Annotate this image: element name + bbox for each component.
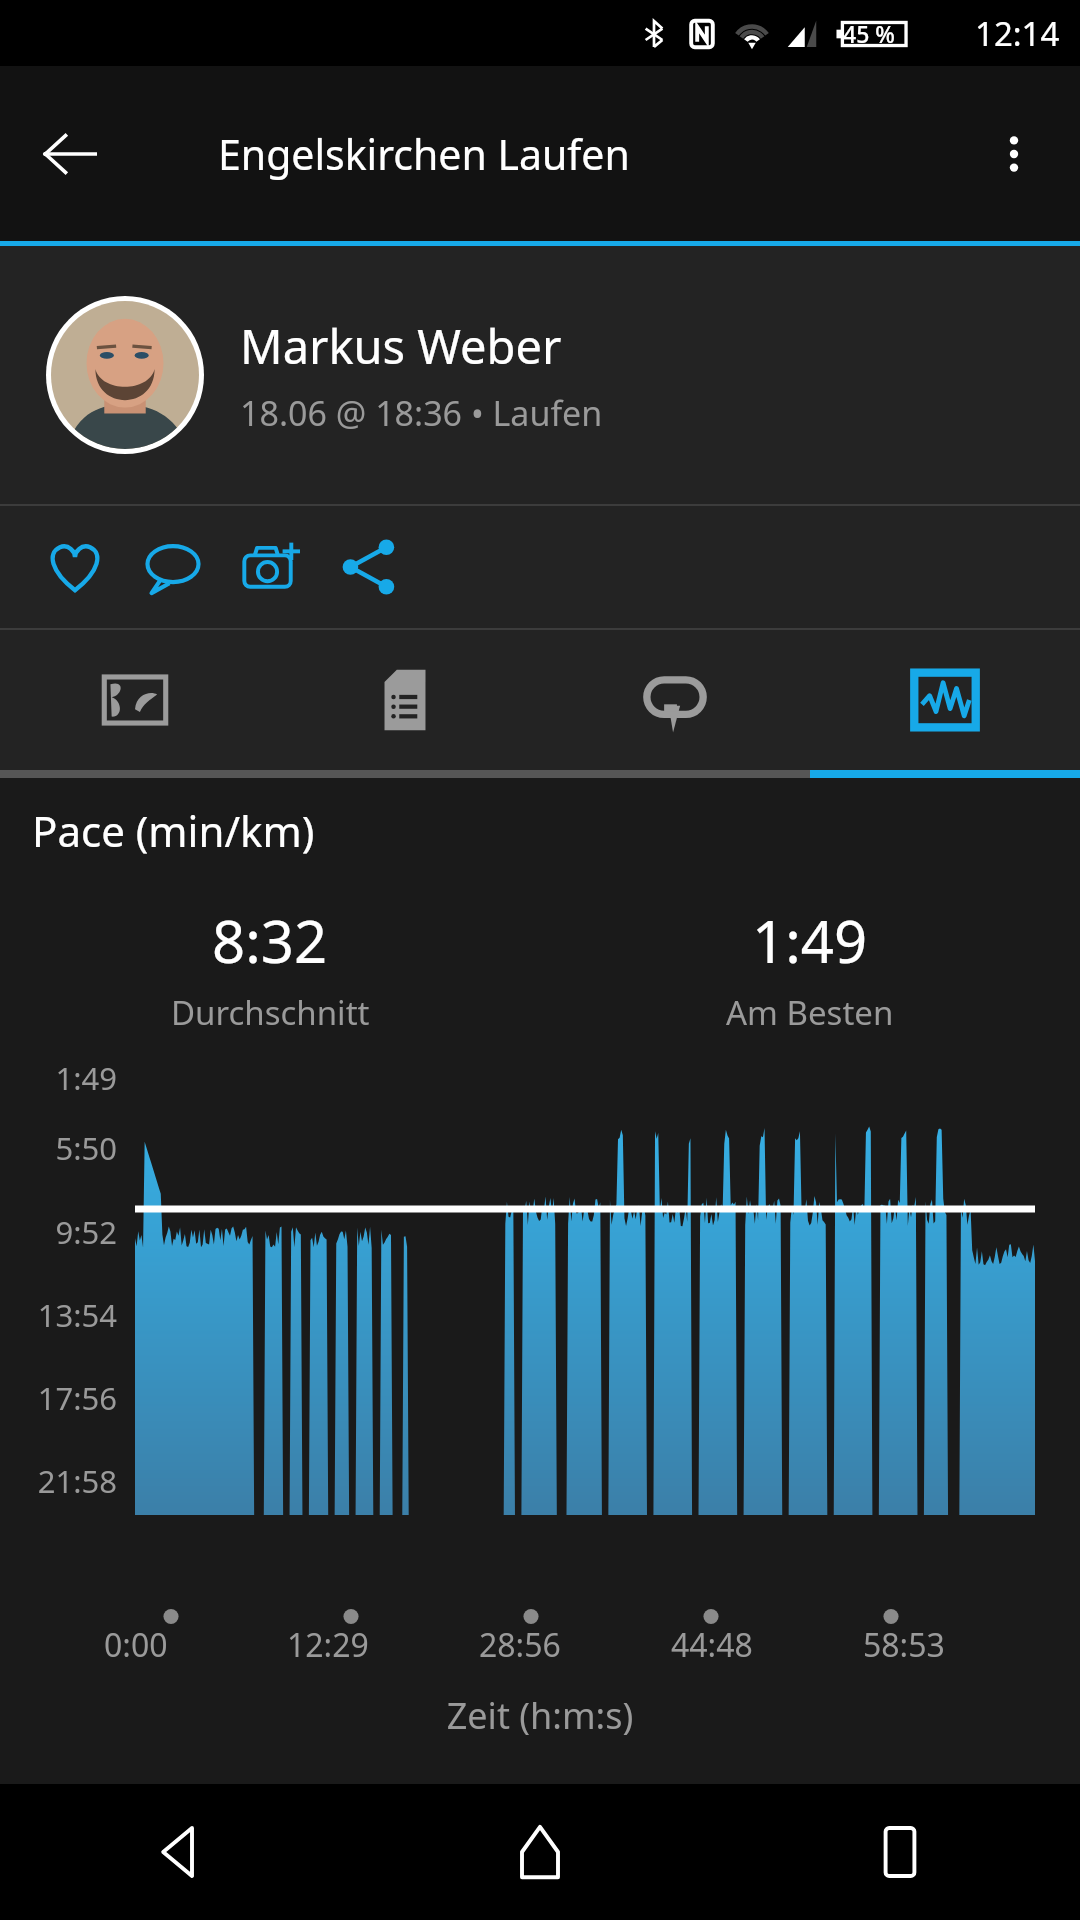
staticText: Zeit (h:m:s) [0,1691,1080,1740]
button[interactable]: Details tab [270,630,540,770]
staticText: Am Besten [726,990,894,1035]
staticText: 18.06 @ 18:36 • Laufen [240,390,603,436]
staticText: 17:56 [0,1377,117,1419]
staticText: 0:00 [104,1623,168,1657]
staticText: 58:53 [863,1623,945,1657]
staticText: 1:49 [752,901,868,980]
button[interactable]: Laps tab [540,630,810,770]
staticText: 44:48 [671,1623,753,1657]
staticText: 8:32 [212,901,328,980]
staticText: 13:54 [0,1294,117,1336]
button[interactable]: Back [30,114,110,194]
button[interactable]: Share [320,518,418,616]
button[interactable]: Comment [124,518,222,616]
button[interactable]: Recent apps [720,1784,1080,1920]
staticText: 28:56 [479,1623,561,1657]
staticText: 21:58 [0,1460,117,1502]
button[interactable]: Charts tab [810,630,1080,770]
button[interactable]: Markus Weber [0,246,1080,504]
staticText: 1:49 [0,1057,117,1099]
staticText: 12:29 [287,1623,369,1657]
button[interactable]: Home [360,1784,720,1920]
button[interactable]: Like [26,518,124,616]
staticText: Pace (min/km) [32,802,315,859]
staticText: 12:14 [975,11,1060,56]
button[interactable]: Map tab [0,630,270,770]
staticText: 9:52 [0,1211,117,1253]
staticText: 45 % [843,18,895,49]
button[interactable]: Add photo [222,518,320,616]
staticText: Markus Weber [240,314,562,378]
button[interactable]: More options [974,114,1054,194]
staticText: Engelskirchen Laufen [218,126,630,182]
button[interactable]: Back [0,1784,360,1920]
staticText: Durchschnitt [171,990,370,1035]
staticText: 5:50 [0,1127,117,1169]
